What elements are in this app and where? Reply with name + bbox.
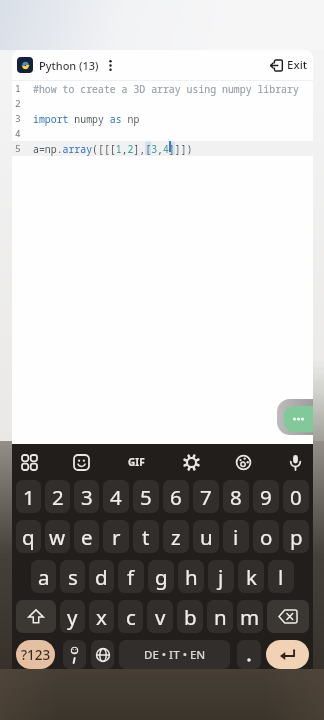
button[interactable]: DE • IT • EN bbox=[119, 640, 230, 669]
staticText: k bbox=[246, 563, 257, 591]
button[interactable]: q bbox=[16, 520, 41, 553]
staticText: GIF bbox=[128, 455, 145, 469]
staticText: e bbox=[81, 523, 93, 551]
staticText: 5 bbox=[15, 142, 21, 155]
staticText: p bbox=[290, 523, 303, 551]
button[interactable]: 1 bbox=[16, 480, 41, 513]
button[interactable] bbox=[16, 600, 56, 633]
button[interactable]: 3 bbox=[74, 480, 99, 513]
staticText: z bbox=[171, 523, 181, 551]
staticText: 5 bbox=[140, 483, 152, 511]
staticText: b bbox=[184, 603, 197, 631]
staticText: t bbox=[142, 523, 150, 551]
button[interactable]: 0 bbox=[283, 480, 309, 513]
staticText: q bbox=[22, 523, 35, 551]
button[interactable]: g bbox=[148, 560, 174, 593]
staticText: o bbox=[260, 523, 273, 551]
button[interactable]: j bbox=[208, 560, 234, 593]
button[interactable]: 6 bbox=[163, 480, 189, 513]
button[interactable]: 9 bbox=[253, 480, 279, 513]
staticText: import numpy as np bbox=[33, 112, 140, 125]
staticText: x bbox=[96, 603, 107, 631]
button[interactable]: h bbox=[178, 560, 204, 593]
staticText: DE • IT • EN bbox=[144, 647, 206, 663]
staticText: v bbox=[155, 603, 166, 631]
button[interactable]: t bbox=[133, 520, 159, 553]
button[interactable]: 2 bbox=[45, 480, 70, 513]
button[interactable] bbox=[237, 640, 261, 669]
button[interactable]: p bbox=[283, 520, 309, 553]
staticText: 2 bbox=[52, 483, 64, 511]
staticText: a bbox=[38, 563, 50, 591]
staticText: 3 bbox=[15, 112, 21, 125]
button[interactable]: x bbox=[89, 600, 114, 633]
button[interactable]: r bbox=[103, 520, 129, 553]
button[interactable] bbox=[19, 452, 39, 472]
button[interactable]: u bbox=[193, 520, 219, 553]
button[interactable]: c bbox=[118, 600, 143, 633]
staticText: n bbox=[214, 603, 227, 631]
staticText: l bbox=[278, 563, 284, 591]
button[interactable]: f bbox=[118, 560, 144, 593]
button[interactable]: 5 bbox=[133, 480, 159, 513]
button[interactable] bbox=[233, 452, 253, 472]
button[interactable]: 4 bbox=[103, 480, 129, 513]
button[interactable]: ?123 bbox=[16, 640, 55, 669]
button[interactable]: i bbox=[223, 520, 249, 553]
staticText: d bbox=[95, 563, 108, 591]
button[interactable]: a bbox=[31, 560, 56, 593]
button[interactable] bbox=[285, 452, 305, 472]
staticText: 2 bbox=[15, 97, 21, 110]
staticText: j bbox=[218, 563, 224, 591]
button[interactable] bbox=[267, 600, 309, 633]
button[interactable]: n bbox=[207, 600, 233, 633]
button[interactable]: z bbox=[163, 520, 189, 553]
button[interactable]: w bbox=[45, 520, 70, 553]
staticText: m bbox=[240, 603, 260, 631]
button[interactable]: Exit bbox=[268, 55, 310, 75]
staticText: a=np.array([[[1,2],[3,4]]]) bbox=[33, 142, 193, 155]
button[interactable]: b bbox=[177, 600, 203, 633]
staticText: h bbox=[185, 563, 198, 591]
staticText: 1 bbox=[15, 82, 21, 95]
staticText: 6 bbox=[170, 483, 182, 511]
button[interactable]: s bbox=[60, 560, 85, 593]
staticText: 1 bbox=[23, 483, 35, 511]
staticText: s bbox=[68, 563, 78, 591]
staticText: 0 bbox=[290, 483, 302, 511]
button[interactable]: 7 bbox=[193, 480, 219, 513]
staticText: g bbox=[155, 563, 168, 591]
staticText: c bbox=[126, 603, 136, 631]
staticText: 4 bbox=[15, 127, 21, 140]
button[interactable]: m bbox=[237, 600, 263, 633]
button[interactable] bbox=[71, 452, 91, 472]
staticText: i bbox=[233, 523, 239, 551]
button[interactable]: v bbox=[147, 600, 173, 633]
staticText: #how to create a 3D array using numpy li… bbox=[33, 82, 299, 95]
button[interactable] bbox=[181, 452, 201, 472]
staticText: y bbox=[67, 603, 78, 631]
staticText: r bbox=[112, 523, 121, 551]
button[interactable] bbox=[266, 640, 309, 669]
button[interactable] bbox=[103, 58, 117, 72]
staticText: u bbox=[200, 523, 213, 551]
button[interactable]: 8 bbox=[223, 480, 249, 513]
staticText: 7 bbox=[200, 483, 212, 511]
button[interactable]: o bbox=[253, 520, 279, 553]
staticText: 8 bbox=[230, 483, 242, 511]
button[interactable]: y bbox=[60, 600, 85, 633]
button[interactable] bbox=[284, 406, 313, 432]
button[interactable] bbox=[91, 640, 114, 669]
button[interactable]: k bbox=[238, 560, 264, 593]
button[interactable]: d bbox=[89, 560, 114, 593]
staticText: w bbox=[49, 523, 66, 551]
staticText: Python (13) bbox=[39, 58, 99, 73]
button[interactable]: e bbox=[74, 520, 99, 553]
staticText: Exit bbox=[287, 57, 308, 73]
button[interactable]: l bbox=[268, 560, 294, 593]
staticText: 4 bbox=[110, 483, 122, 511]
staticText: 3 bbox=[81, 483, 93, 511]
staticText: ?123 bbox=[21, 646, 51, 664]
button[interactable] bbox=[63, 640, 86, 669]
button[interactable]: GIF bbox=[123, 453, 149, 471]
